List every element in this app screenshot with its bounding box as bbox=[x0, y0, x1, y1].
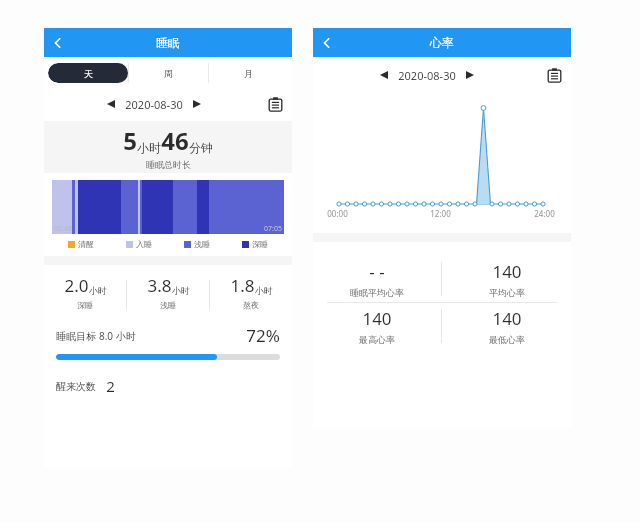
staticText: 浅睡 bbox=[160, 300, 176, 310]
staticText: 1.8 bbox=[230, 274, 255, 297]
staticText: 睡眠目标 8.0 小时 bbox=[56, 329, 136, 343]
staticText: 24:00 bbox=[534, 208, 555, 219]
staticText: 周 bbox=[164, 68, 173, 79]
staticText: 46 bbox=[161, 124, 189, 157]
button[interactable]: Previous day bbox=[102, 95, 120, 113]
staticText: 72% bbox=[246, 324, 280, 347]
staticText: 140 bbox=[492, 260, 522, 283]
button[interactable]: 1.8 bbox=[210, 274, 292, 310]
button[interactable]: Next day bbox=[461, 66, 479, 84]
staticText: 天 bbox=[84, 68, 93, 79]
button[interactable]: 天 bbox=[48, 63, 128, 83]
staticText: 12:00 bbox=[430, 208, 451, 219]
button[interactable]: Next day bbox=[188, 95, 206, 113]
button[interactable]: Previous day bbox=[375, 66, 393, 84]
staticText: 深睡 bbox=[252, 239, 268, 249]
staticText: 深睡 bbox=[77, 300, 93, 310]
button[interactable]: Back bbox=[313, 29, 341, 57]
staticText: 小时 bbox=[89, 285, 107, 296]
staticText: 3.8 bbox=[147, 274, 172, 297]
staticText: 07:05 bbox=[264, 224, 282, 234]
button[interactable]: Back bbox=[44, 29, 72, 57]
staticText: 睡眠平均心率 bbox=[350, 287, 404, 298]
button[interactable]: Calendar bbox=[264, 93, 286, 115]
staticText: 心率 bbox=[430, 35, 454, 50]
staticText: - - bbox=[369, 260, 385, 283]
staticText: 分钟 bbox=[189, 140, 213, 155]
staticText: 睡眠 bbox=[156, 35, 180, 50]
staticText: 熬夜 bbox=[243, 300, 259, 310]
button[interactable]: 3.8 bbox=[127, 274, 209, 310]
staticText: 00:00 bbox=[327, 208, 348, 219]
staticText: 月 bbox=[244, 68, 253, 79]
staticText: 2.0 bbox=[64, 274, 89, 297]
staticText: 小时 bbox=[172, 285, 190, 296]
staticText: 2 bbox=[106, 376, 115, 396]
button[interactable]: Calendar bbox=[543, 64, 565, 86]
button[interactable]: 周 bbox=[129, 63, 208, 83]
button[interactable]: 140 bbox=[442, 256, 571, 302]
staticText: 最高心率 bbox=[359, 334, 395, 345]
staticText: 2020-08-30 bbox=[125, 97, 183, 112]
staticText: 140 bbox=[492, 307, 522, 330]
button[interactable]: - - bbox=[313, 256, 441, 302]
button[interactable]: 140 bbox=[313, 303, 441, 349]
staticText: 00:48 bbox=[54, 224, 72, 234]
button[interactable]: 月 bbox=[209, 63, 288, 83]
staticText: 小时 bbox=[137, 140, 161, 155]
staticText: 2020-08-30 bbox=[398, 68, 456, 83]
staticText: 最低心率 bbox=[489, 334, 525, 345]
button[interactable]: 2.0 bbox=[44, 274, 126, 310]
button[interactable]: 140 bbox=[442, 303, 571, 349]
staticText: 浅睡 bbox=[194, 239, 210, 249]
staticText: 醒来次数 bbox=[56, 380, 96, 393]
staticText: 睡眠总时长 bbox=[146, 159, 191, 170]
staticText: 入睡 bbox=[136, 239, 152, 249]
staticText: 140 bbox=[362, 307, 392, 330]
staticText: 小时 bbox=[255, 285, 273, 296]
staticText: 5 bbox=[123, 124, 137, 157]
staticText: 平均心率 bbox=[489, 287, 525, 298]
staticText: 清醒 bbox=[78, 239, 94, 249]
